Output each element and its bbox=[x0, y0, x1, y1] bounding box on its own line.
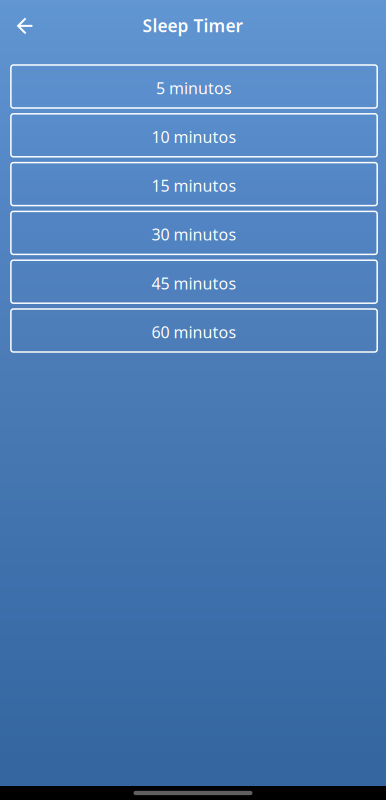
button[interactable]: 60 minutos bbox=[11, 309, 377, 352]
staticText: Sleep Timer bbox=[142, 14, 243, 37]
staticText: 45 minutos bbox=[152, 273, 237, 294]
staticText: 30 minutos bbox=[152, 224, 237, 245]
button[interactable]: 10 minutos bbox=[11, 114, 377, 157]
button[interactable]: 45 minutos bbox=[11, 260, 377, 303]
button[interactable]: Back bbox=[0, 0, 51, 51]
staticText: 5 minutos bbox=[156, 77, 232, 99]
button[interactable]: 15 minutos bbox=[11, 163, 377, 206]
staticText: 15 minutos bbox=[152, 175, 237, 196]
button[interactable]: 30 minutos bbox=[11, 211, 377, 254]
staticText: 60 minutos bbox=[152, 321, 237, 343]
staticText: 10 minutos bbox=[152, 126, 237, 147]
button[interactable]: 5 minutos bbox=[11, 65, 377, 108]
